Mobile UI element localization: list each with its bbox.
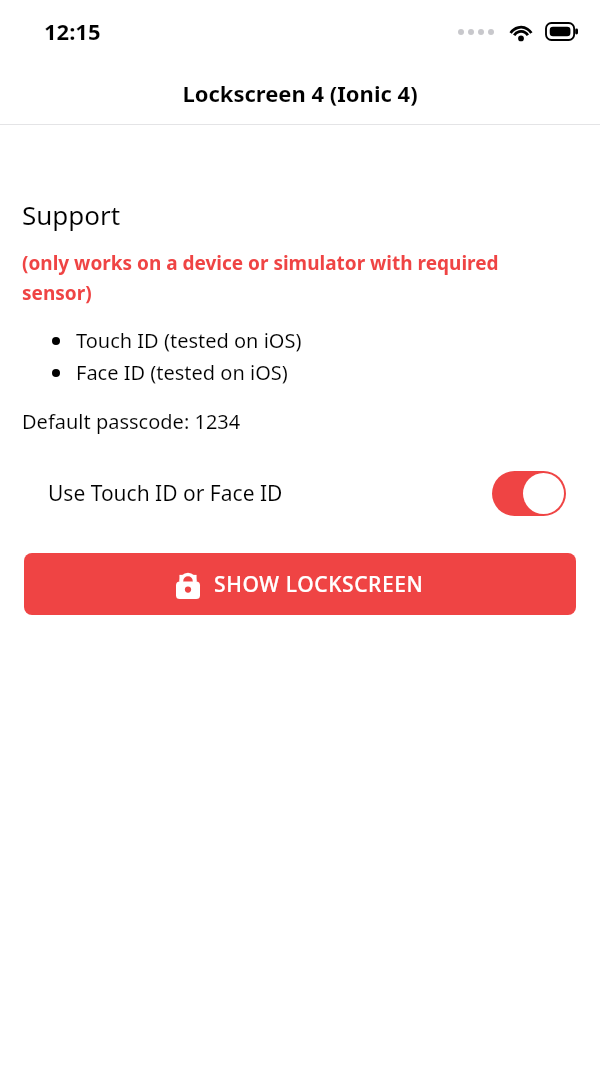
button[interactable]: Use Touch ID or Face ID xyxy=(0,465,600,521)
staticText: Default passcode: 1234 xyxy=(22,408,241,435)
staticText: Support xyxy=(22,197,121,232)
button[interactable]: SHOW LOCKSCREEN xyxy=(24,553,576,615)
staticText: 12:15 xyxy=(44,16,101,46)
staticText: Touch ID (tested on iOS) xyxy=(76,327,302,354)
staticText: (only works on a device or simulator wit… xyxy=(22,250,500,305)
staticText: Lockscreen 4 (Ionic 4) xyxy=(182,78,418,108)
staticText: Face ID (tested on iOS) xyxy=(76,359,288,386)
staticText: Use Touch ID or Face ID xyxy=(48,479,283,508)
button[interactable]: Use Touch ID or Face ID toggle xyxy=(492,471,566,516)
staticText: SHOW LOCKSCREEN xyxy=(214,570,424,599)
